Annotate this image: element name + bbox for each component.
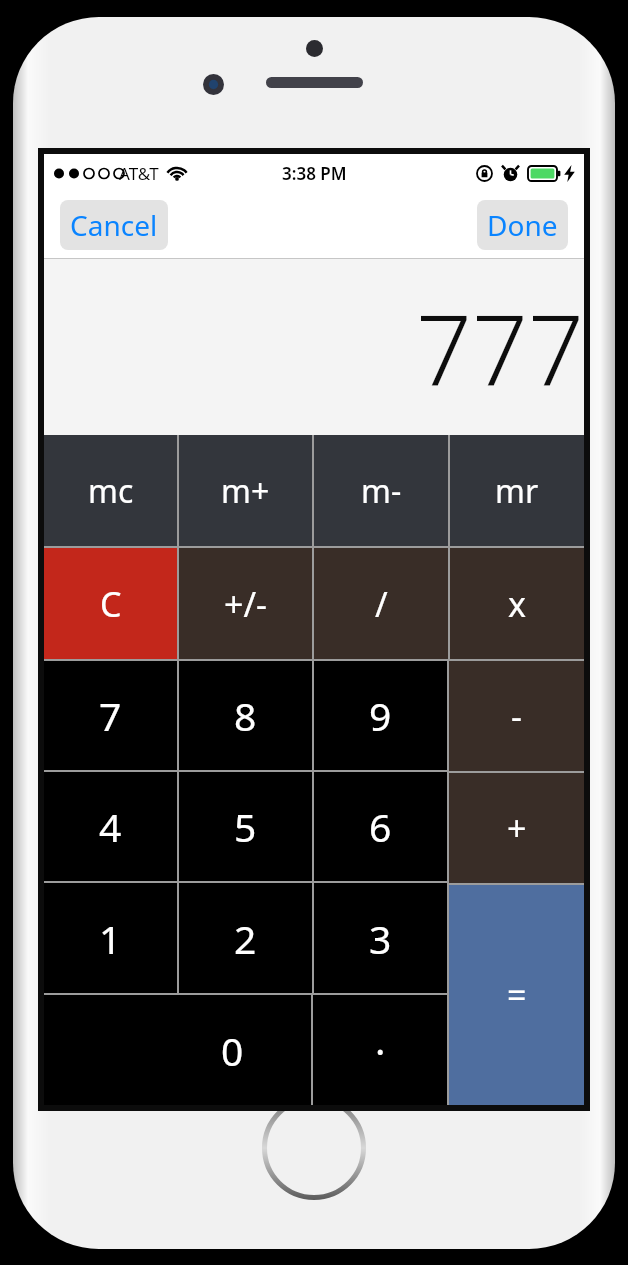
staticText: 0 (221, 1024, 244, 1077)
staticText: m- (361, 469, 402, 513)
button[interactable]: 6 (314, 772, 447, 881)
staticText: 2 (234, 912, 257, 965)
staticText: x (508, 581, 526, 627)
button[interactable]: x (450, 548, 584, 659)
staticText: - (511, 693, 522, 739)
staticText: mc (88, 469, 134, 513)
button[interactable]: 1 (44, 883, 177, 993)
staticText: + (507, 805, 527, 851)
staticText: 8 (234, 689, 257, 742)
button[interactable]: 4 (44, 772, 177, 881)
staticText: C (100, 581, 122, 627)
staticText: 6 (369, 800, 392, 853)
button[interactable]: 7 (44, 661, 177, 770)
staticText: +/- (224, 581, 268, 627)
button[interactable]: Done (477, 200, 568, 250)
button[interactable]: 3 (314, 883, 447, 993)
button[interactable]: m+ (179, 435, 312, 546)
staticText: 777 (416, 281, 584, 414)
button[interactable]: 2 (179, 883, 312, 993)
button[interactable]: mr (450, 435, 584, 546)
staticText: / (375, 581, 388, 627)
staticText: · (375, 1024, 386, 1077)
button[interactable]: m- (314, 435, 448, 546)
staticText: 3:38 PM (282, 162, 347, 185)
button[interactable]: - (449, 661, 584, 771)
button[interactable]: 8 (179, 661, 312, 770)
staticText: 7 (99, 689, 122, 742)
staticText: 3 (369, 912, 392, 965)
button[interactable]: mc (44, 435, 177, 546)
button[interactable]: +/- (179, 548, 312, 659)
staticText: Cancel (70, 206, 158, 244)
staticText: mr (495, 469, 539, 513)
button[interactable]: 9 (314, 661, 447, 770)
button[interactable]: 0 (44, 995, 311, 1105)
staticText: 9 (369, 689, 392, 742)
staticText: 4 (99, 800, 122, 853)
staticText: 1 (99, 912, 122, 965)
button[interactable]: = (449, 885, 584, 1105)
staticText: Done (487, 206, 558, 244)
staticText: m+ (221, 469, 270, 513)
button[interactable]: · (313, 995, 447, 1105)
staticText: AT&T (119, 162, 159, 185)
button[interactable]: / (314, 548, 448, 659)
staticText: = (507, 972, 527, 1018)
button[interactable]: Cancel (60, 200, 168, 250)
button[interactable]: + (449, 773, 584, 883)
button[interactable]: C (44, 548, 177, 659)
button[interactable]: 5 (179, 772, 312, 881)
staticText: 5 (234, 800, 257, 853)
